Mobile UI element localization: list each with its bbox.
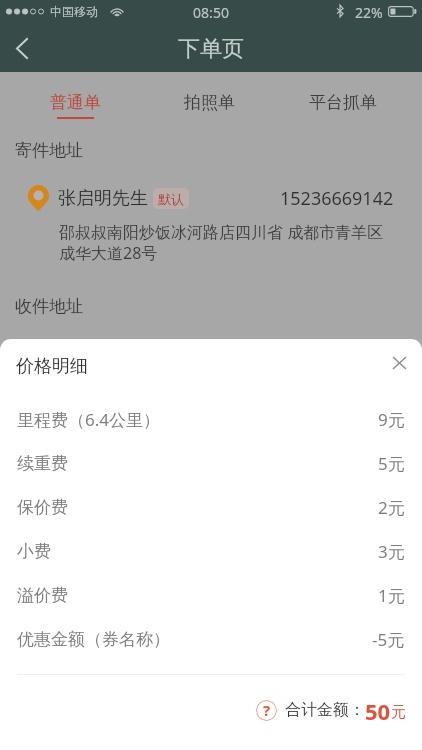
- staticText: 15236669142: [280, 186, 394, 211]
- staticText: 里程费（6.4公里）: [17, 408, 161, 431]
- staticText: 08:50: [0, 3, 422, 22]
- staticText: 22%: [355, 3, 383, 22]
- button[interactable]: 溢价费: [17, 573, 405, 617]
- staticText: 邵叔叔南阳炒饭冰河路店四川省 成都市青羊区 成华大道28号: [59, 221, 384, 263]
- button[interactable]: 里程费（6.4公里）: [17, 397, 405, 441]
- staticText: 合计金额：: [285, 700, 365, 720]
- staticText: 下单页: [0, 35, 422, 63]
- button[interactable]: 普通单: [8, 72, 142, 122]
- staticText: 续重费: [17, 453, 68, 474]
- staticText: 默认: [158, 191, 184, 207]
- staticText: 3元: [378, 540, 405, 563]
- staticText: 普通单: [50, 92, 101, 113]
- staticText: 元: [391, 703, 406, 722]
- staticText: 溢价费: [17, 585, 68, 606]
- button[interactable]: 续重费: [17, 441, 405, 485]
- staticText: 寄件地址: [15, 140, 83, 161]
- button[interactable]: 保价费: [17, 485, 405, 529]
- button[interactable]: 平台抓单: [276, 72, 410, 122]
- staticText: 拍照单: [184, 92, 235, 113]
- staticText: ?: [263, 700, 271, 720]
- staticText: 保价费: [17, 497, 68, 518]
- staticText: 中国移动: [50, 4, 98, 19]
- staticText: 5元: [378, 452, 405, 475]
- staticText: -5元: [372, 628, 405, 651]
- button[interactable]: 小费: [17, 529, 405, 573]
- button[interactable]: Back: [0, 26, 44, 70]
- button[interactable]: Help: [256, 700, 277, 721]
- staticText: 9元: [378, 408, 405, 431]
- staticText: 收件地址: [15, 296, 83, 317]
- button[interactable]: 拍照单: [142, 72, 276, 122]
- staticText: 价格明细: [16, 355, 88, 378]
- staticText: 2元: [378, 496, 405, 519]
- staticText: 优惠金额（券名称）: [17, 629, 170, 650]
- staticText: 张启明先生: [58, 187, 148, 210]
- button[interactable]: Close: [382, 346, 416, 380]
- staticText: 小费: [17, 541, 51, 562]
- staticText: 平台抓单: [309, 92, 377, 113]
- button[interactable]: 优惠金额（券名称）: [17, 617, 405, 661]
- staticText: 1元: [378, 584, 405, 607]
- staticText: 50: [365, 696, 391, 726]
